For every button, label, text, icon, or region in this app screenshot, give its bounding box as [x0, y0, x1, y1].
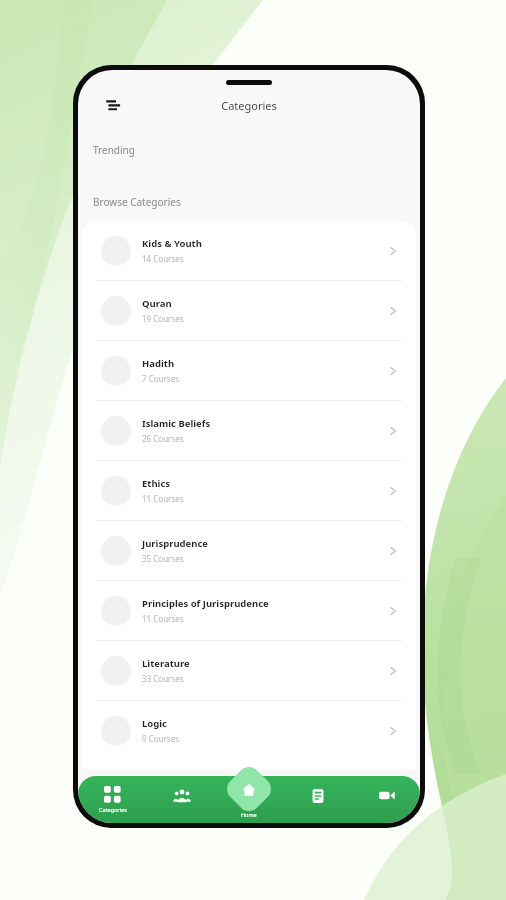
- button[interactable]: Ethics: [82, 461, 416, 520]
- button[interactable]: Logic: [82, 701, 416, 760]
- staticText: Browse Categories: [93, 195, 181, 209]
- staticText: Hadith: [142, 357, 175, 370]
- staticText: Literature: [142, 657, 190, 670]
- staticText: Principles of Jurisprudence: [142, 597, 269, 610]
- staticText: Quran: [142, 297, 172, 310]
- button[interactable]: Home: [230, 770, 268, 818]
- staticText: 7 Courses: [142, 373, 179, 384]
- button[interactable]: Articles: [284, 776, 352, 823]
- staticText: 19 Courses: [142, 313, 184, 324]
- staticText: Trending: [93, 143, 135, 157]
- button[interactable]: Community: [147, 776, 216, 823]
- staticText: Islamic Beliefs: [142, 417, 211, 430]
- staticText: 11 Courses: [142, 613, 184, 624]
- staticText: 11 Courses: [142, 493, 184, 504]
- button[interactable]: Quran: [82, 281, 416, 340]
- staticText: 26 Courses: [142, 433, 184, 444]
- staticText: Logic: [142, 717, 167, 730]
- staticText: Categories: [99, 806, 127, 813]
- button[interactable]: Categories: [78, 776, 147, 823]
- button[interactable]: Principles of Jurisprudence: [82, 581, 416, 640]
- button[interactable]: Videos: [352, 776, 420, 823]
- staticText: 9 Courses: [142, 733, 179, 744]
- staticText: Home: [241, 811, 257, 818]
- button[interactable]: Islamic Beliefs: [82, 401, 416, 460]
- staticText: Categories: [221, 98, 277, 113]
- staticText: Ethics: [142, 477, 171, 490]
- staticText: 14 Courses: [142, 253, 184, 264]
- button[interactable]: Hadith: [82, 341, 416, 400]
- staticText: Kids & Youth: [142, 237, 202, 250]
- button[interactable]: Menu: [92, 87, 132, 123]
- button[interactable]: Literature: [82, 641, 416, 700]
- button[interactable]: Kids & Youth: [82, 221, 416, 280]
- button[interactable]: Jurisprudence: [82, 521, 416, 580]
- staticText: 33 Courses: [142, 673, 184, 684]
- staticText: 35 Courses: [142, 553, 184, 564]
- staticText: Jurisprudence: [142, 537, 209, 550]
